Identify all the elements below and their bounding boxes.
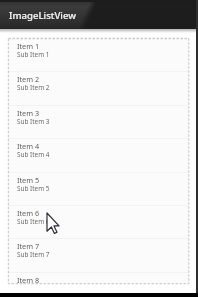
staticText: Item 6 — [17, 208, 40, 218]
staticText: Sub Item 5 — [17, 184, 50, 193]
button[interactable]: ImageListView — [0, 0, 198, 29]
staticText: Item 2 — [17, 74, 40, 84]
staticText: Sub Item 1 — [17, 50, 50, 59]
staticText: Sub Item 3 — [17, 117, 50, 126]
button[interactable]: Item 1 — [8, 38, 188, 71]
staticText: Item 8 — [17, 275, 40, 283]
staticText: Sub Item 4 — [17, 150, 50, 159]
button[interactable]: Item 5 — [8, 172, 188, 205]
staticText: Item 7 — [17, 241, 40, 251]
staticText: Item 5 — [17, 175, 40, 185]
button[interactable]: Item 2 — [8, 71, 188, 104]
staticText: Sub Item 7 — [17, 250, 50, 259]
staticText: ImageListView — [9, 9, 77, 22]
staticText: Item 3 — [17, 108, 40, 118]
button[interactable]: Item 7 — [8, 238, 188, 271]
button[interactable]: Item 3 — [8, 105, 188, 138]
button[interactable]: Item 6 — [8, 205, 188, 238]
staticText: Sub Item 2 — [17, 83, 50, 92]
staticText: Item 4 — [17, 141, 40, 151]
staticText: Sub Item 6 — [17, 217, 50, 226]
staticText: Item 1 — [17, 41, 40, 51]
button[interactable]: Item 8 — [8, 272, 188, 283]
button[interactable]: Item 4 — [8, 138, 188, 171]
